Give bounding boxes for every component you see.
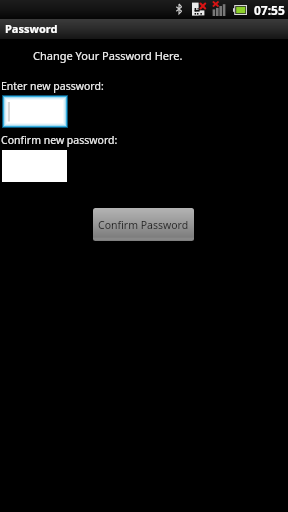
staticText: 07:55 <box>254 2 285 18</box>
staticText: Confirm Password <box>98 218 189 232</box>
staticText: Password <box>5 21 58 36</box>
button[interactable] <box>2 95 68 128</box>
staticText: Enter new password: <box>1 79 104 93</box>
staticText: Confirm new password: <box>1 133 118 147</box>
staticText: Change Your Password Here. <box>33 48 183 63</box>
button[interactable]: Confirm Password <box>93 208 194 241</box>
